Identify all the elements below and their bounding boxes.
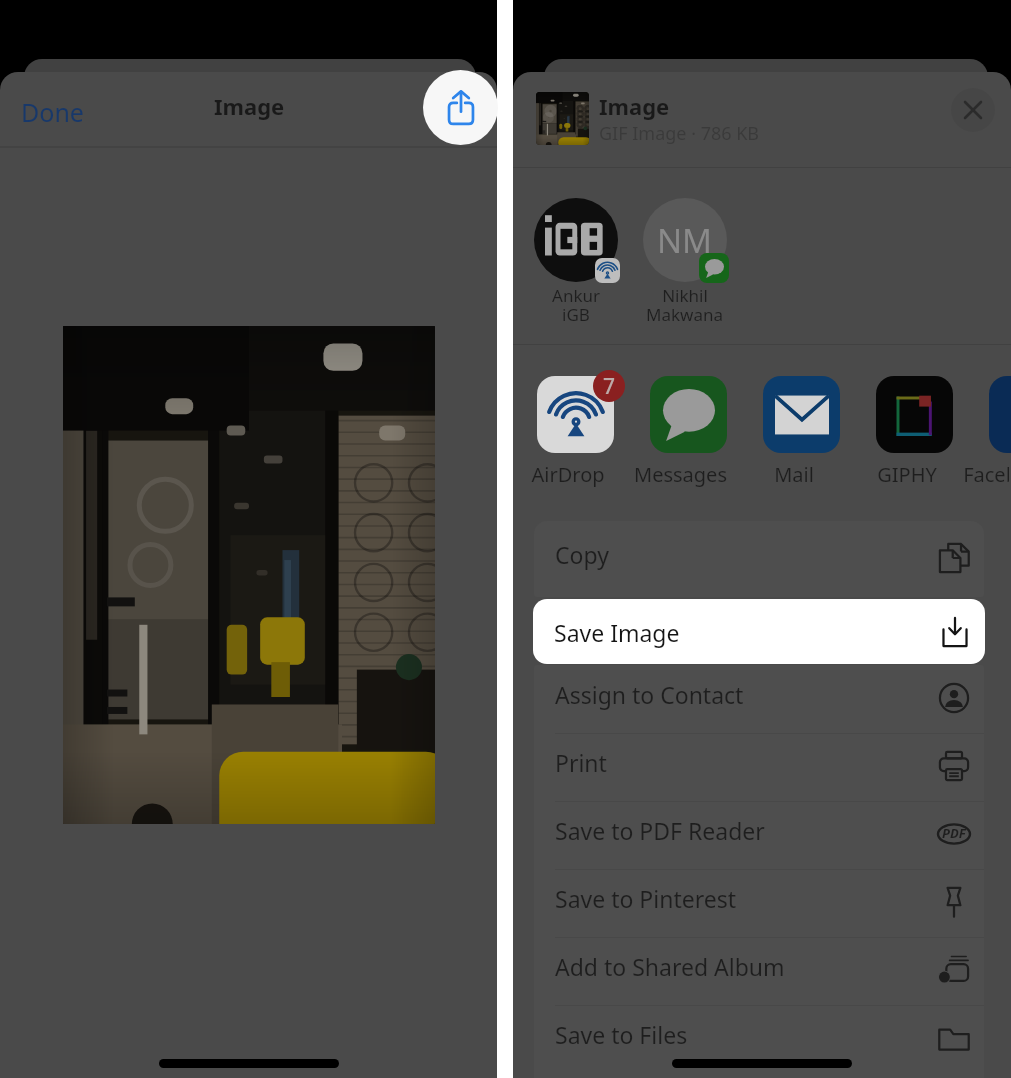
staticText: Add to Shared Album: [555, 951, 938, 982]
staticText: Facebook: [963, 461, 1009, 488]
staticText: Done: [21, 95, 84, 129]
button[interactable]: Save to Pinterest: [534, 869, 984, 937]
staticText: GIPHY: [877, 461, 937, 488]
staticText: Assign to Contact: [555, 679, 938, 710]
button[interactable]: Close: [951, 88, 995, 132]
staticText: Save to PDF Reader: [555, 815, 938, 846]
staticText: Messages: [634, 461, 727, 488]
staticText: GIF Image · 786 KB: [599, 121, 760, 146]
button[interactable]: Save to PDF Reader: [534, 801, 984, 869]
button[interactable]: Save Image: [533, 599, 985, 664]
button[interactable]: Mail: [763, 376, 876, 496]
button[interactable]: Print: [534, 733, 984, 801]
button[interactable]: GIPHY: [876, 376, 989, 496]
staticText: Copy: [555, 539, 938, 570]
staticText: NM: [657, 218, 713, 263]
button[interactable]: Share: [423, 70, 498, 145]
button[interactable]: AirDrop: [537, 376, 650, 496]
staticText: Ankur: [552, 284, 600, 307]
button[interactable]: Add to Shared Album: [534, 937, 984, 1005]
button[interactable]: Save to Files: [534, 1005, 984, 1073]
staticText: Image: [214, 91, 285, 121]
button[interactable]: Ankur: [521, 198, 630, 330]
button[interactable]: Messages: [650, 376, 763, 496]
button[interactable]: Copy: [534, 521, 984, 597]
button[interactable]: Facebook: [989, 376, 1011, 496]
staticText: Mail: [774, 461, 814, 488]
staticText: PDF: [942, 824, 966, 842]
staticText: Nikhil: [662, 284, 708, 307]
staticText: Save to Files: [555, 1019, 938, 1050]
button[interactable]: Done: [7, 87, 98, 137]
staticText: AirDrop: [531, 461, 605, 488]
staticText: iGB: [562, 303, 590, 326]
staticText: Save Image: [554, 617, 939, 648]
staticText: 7: [603, 372, 616, 401]
staticText: Print: [555, 747, 938, 778]
button[interactable]: Assign to Contact: [534, 665, 984, 733]
button[interactable]: NM: [630, 198, 739, 330]
staticText: Save to Pinterest: [555, 883, 938, 914]
staticText: Image: [599, 91, 670, 121]
staticText: Makwana: [646, 303, 723, 326]
